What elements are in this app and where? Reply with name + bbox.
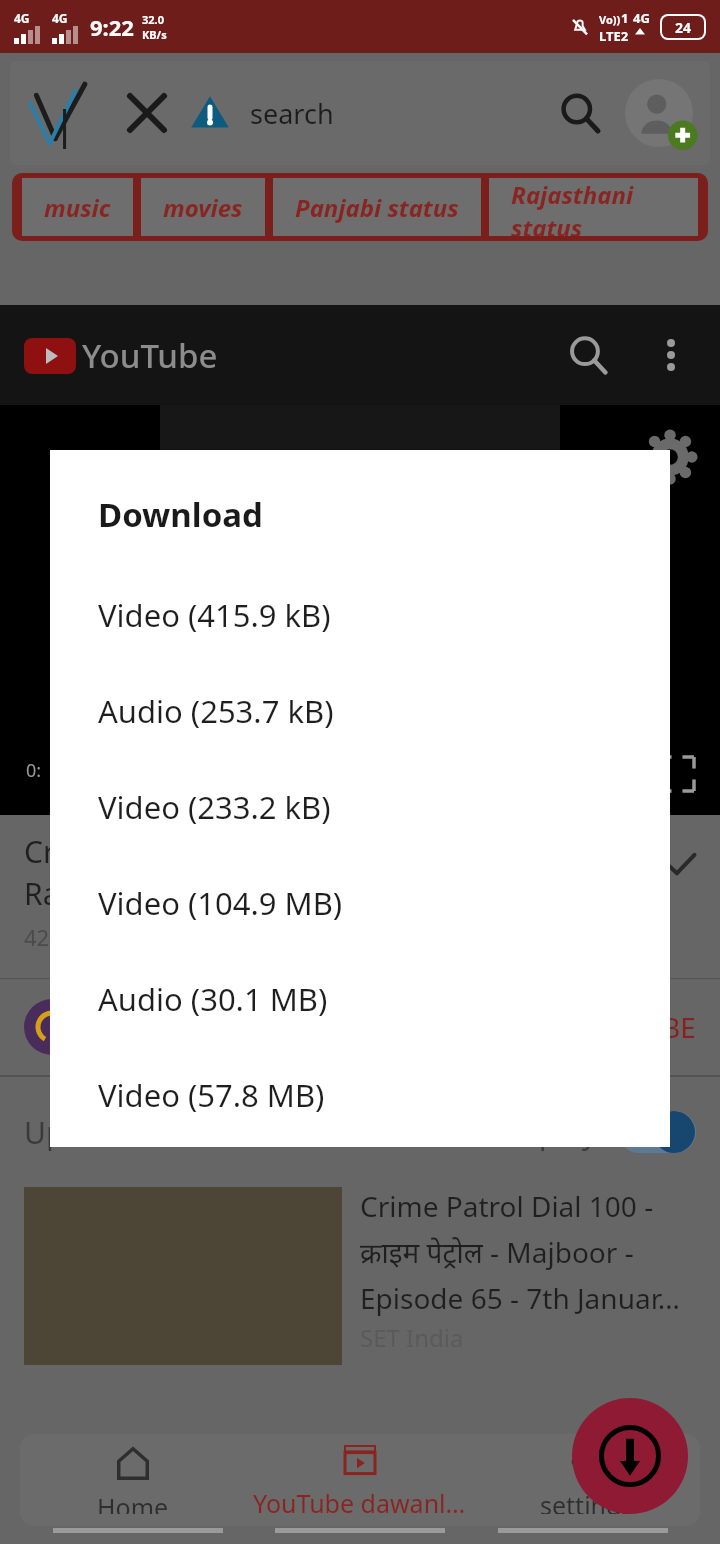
button[interactable]: Settings [644, 431, 696, 483]
staticText: 4G [14, 10, 30, 26]
staticText: 1 [621, 9, 629, 27]
staticText: Video (57.8 MB) [98, 1074, 325, 1116]
staticText: KB/s [142, 27, 167, 42]
button[interactable]: Clear [124, 90, 170, 136]
staticText: Video (104.9 MB) [98, 882, 343, 924]
staticText: movies [163, 191, 243, 224]
staticText: Download [98, 492, 263, 537]
button[interactable]: Fullscreen [660, 757, 694, 791]
staticText: YouTube dawanl… [253, 1486, 466, 1514]
staticText: YouTube [82, 333, 218, 378]
button[interactable]: YouTube [24, 333, 218, 378]
button[interactable]: More options [646, 330, 696, 380]
staticText: 4G [633, 9, 650, 27]
button[interactable] [618, 1111, 696, 1153]
staticText: Video (233.2 kB) [98, 786, 331, 828]
button[interactable]: Video (233.2 kB) [50, 759, 670, 855]
staticText: music [44, 191, 111, 224]
staticText: settings [540, 1488, 634, 1514]
staticText: Audio (253.7 kB) [98, 690, 334, 732]
staticText: 9:22 [90, 12, 134, 42]
staticText: Crime Patrol Dial 100 - Raj... [24, 831, 339, 914]
staticText: Autoplay [472, 1112, 598, 1153]
button[interactable]: Rajasthani status [489, 178, 698, 236]
button[interactable]: Info [188, 91, 232, 135]
button[interactable]: Video (104.9 MB) [50, 855, 670, 951]
staticText: search [250, 95, 334, 132]
button[interactable]: Audio (253.7 kB) [50, 663, 670, 759]
staticText: Panjabi status [295, 191, 459, 224]
staticText: SET India [360, 1321, 464, 1354]
staticText: 32.0 [142, 12, 164, 27]
staticText: 424,... [24, 922, 86, 952]
button[interactable]: YouTube dawanl… [246, 1434, 473, 1526]
button[interactable]: Clear [10, 61, 710, 165]
button[interactable]: SUBSCRIBE [492, 1008, 696, 1046]
button[interactable]: Panjabi status [273, 178, 481, 236]
staticText: Up next [24, 1112, 134, 1153]
staticText: Crime Patrol Dial 100 - क्राइम पेट्रोल -… [360, 1187, 680, 1317]
button[interactable]: movies [141, 178, 265, 236]
button[interactable]: Audio (30.1 MB) [50, 951, 670, 1047]
button[interactable]: 60.7M subscribers [24, 979, 696, 1075]
staticText: 24 [675, 18, 692, 37]
staticText: 4G [52, 10, 68, 26]
staticText: Audio (30.1 MB) [98, 978, 328, 1020]
button[interactable]: music [22, 178, 133, 236]
staticText: Vo)) [599, 12, 621, 27]
staticText: Home [97, 1490, 169, 1514]
button[interactable]: Crime Patrol Dial 100 - क्राइम पेट्रोल -… [24, 1187, 700, 1365]
button[interactable]: Search [560, 327, 616, 383]
button[interactable]: Home [20, 1434, 246, 1526]
button[interactable]: settings [473, 1434, 700, 1526]
button[interactable]: Search [554, 87, 606, 139]
staticText: 60.7M subscribers [104, 1010, 319, 1044]
button[interactable]: Video (415.9 kB) [50, 567, 670, 663]
staticText: SUBSCRIBE [548, 1008, 696, 1046]
button[interactable]: Expand [654, 841, 700, 887]
button[interactable]: Account [622, 76, 696, 150]
button[interactable]: Video (57.8 MB) [50, 1047, 670, 1143]
staticText: 0: [26, 758, 42, 783]
button[interactable]: Download [572, 1398, 688, 1514]
staticText: Rajasthani status [511, 178, 676, 236]
staticText: LTE2 [599, 27, 629, 45]
staticText: Video (415.9 kB) [98, 594, 331, 636]
